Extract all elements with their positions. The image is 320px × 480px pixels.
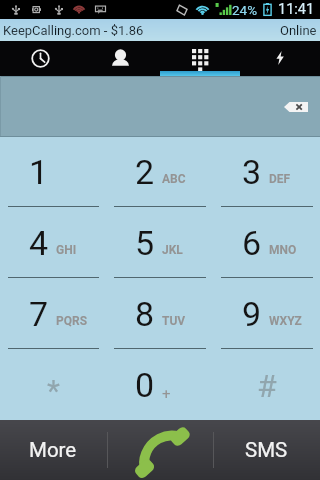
staticText: ABC xyxy=(162,172,186,186)
staticText: 3 xyxy=(242,152,262,192)
staticText: 1 xyxy=(29,152,49,192)
staticText: Online xyxy=(280,23,317,38)
staticText: More xyxy=(29,438,77,462)
button[interactable]: Speed dial xyxy=(240,45,320,71)
button[interactable]: # xyxy=(213,349,320,420)
button[interactable]: 7 xyxy=(0,278,106,349)
button[interactable]: 2 xyxy=(106,137,213,207)
button[interactable]: 5 xyxy=(106,207,213,278)
button[interactable]: Dialpad xyxy=(160,45,240,71)
staticText: 8 xyxy=(135,294,155,334)
staticText: TUV xyxy=(162,314,186,328)
staticText: SMS xyxy=(245,438,288,462)
staticText: MNO xyxy=(269,243,297,257)
button[interactable]: More xyxy=(0,420,106,480)
button[interactable]: 4 xyxy=(0,207,106,278)
button[interactable]: 0 xyxy=(106,349,213,420)
staticText: 9 xyxy=(242,294,262,334)
staticText: JKL xyxy=(162,243,183,257)
staticText: 7 xyxy=(29,294,49,334)
staticText: + xyxy=(162,385,171,403)
staticText: * xyxy=(47,373,60,408)
button[interactable]: Contacts xyxy=(80,45,160,71)
staticText: DEF xyxy=(269,172,291,186)
staticText: 0 xyxy=(135,365,155,405)
button[interactable]: Backspace xyxy=(277,92,315,122)
button[interactable]: 3 xyxy=(213,137,320,207)
staticText: 5 xyxy=(135,223,155,263)
staticText: PQRS xyxy=(56,314,88,328)
staticText: 4 xyxy=(29,223,49,263)
staticText: 24% xyxy=(232,2,258,18)
staticText: 2 xyxy=(135,152,155,192)
button[interactable]: 8 xyxy=(106,278,213,349)
staticText: 11:41 xyxy=(278,1,315,18)
button[interactable]: 1 xyxy=(0,137,106,207)
staticText: # xyxy=(257,367,277,405)
button[interactable]: 6 xyxy=(213,207,320,278)
button[interactable]: * xyxy=(0,349,106,420)
staticText: KeepCalling.com - $1.86 xyxy=(3,23,144,38)
button[interactable]: 9 xyxy=(213,278,320,349)
button[interactable]: Call xyxy=(106,420,213,480)
button[interactable]: Call history xyxy=(0,45,80,71)
staticText: WXYZ xyxy=(269,314,302,328)
staticText: 6 xyxy=(242,223,262,263)
button[interactable]: SMS xyxy=(213,420,320,480)
staticText: GHI xyxy=(56,243,77,257)
